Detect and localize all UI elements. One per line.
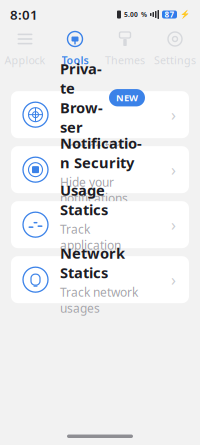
staticText: Notification Security [60, 133, 142, 172]
button[interactable]: Themes [100, 28, 150, 69]
button[interactable]: Tools [50, 28, 100, 69]
staticText: 8:01 [10, 6, 38, 23]
staticText: Settings [154, 53, 196, 67]
staticText: Hide your notifications [60, 174, 128, 206]
staticText: Track network usages [60, 284, 138, 316]
staticText: Themes [105, 53, 145, 67]
button[interactable]: Network Statics [11, 256, 189, 303]
staticText: › [171, 159, 176, 180]
staticText: › [171, 214, 176, 235]
button[interactable]: Private Browser [11, 91, 189, 138]
staticText: Track application usages [60, 221, 121, 269]
button[interactable]: Applock [0, 28, 50, 69]
staticText: › [171, 269, 176, 290]
staticText: › [171, 104, 176, 125]
staticText: ⚡ [180, 10, 190, 19]
staticText: Usage Statics [60, 180, 108, 219]
staticText: Browse the web securely [60, 139, 133, 171]
staticText: Applock [4, 53, 45, 67]
staticText: Private Browser [60, 59, 103, 137]
button[interactable]: Notification Security [11, 146, 189, 193]
staticText: Tools [61, 53, 88, 67]
staticText: Network Statics [60, 243, 125, 282]
staticText: NEW [116, 91, 138, 104]
button[interactable]: Settings [150, 28, 200, 69]
staticText: 5.00 [124, 10, 138, 19]
staticText: % [141, 10, 147, 19]
button[interactable]: Usage Statics [11, 201, 189, 248]
staticText: 87 [164, 9, 174, 20]
